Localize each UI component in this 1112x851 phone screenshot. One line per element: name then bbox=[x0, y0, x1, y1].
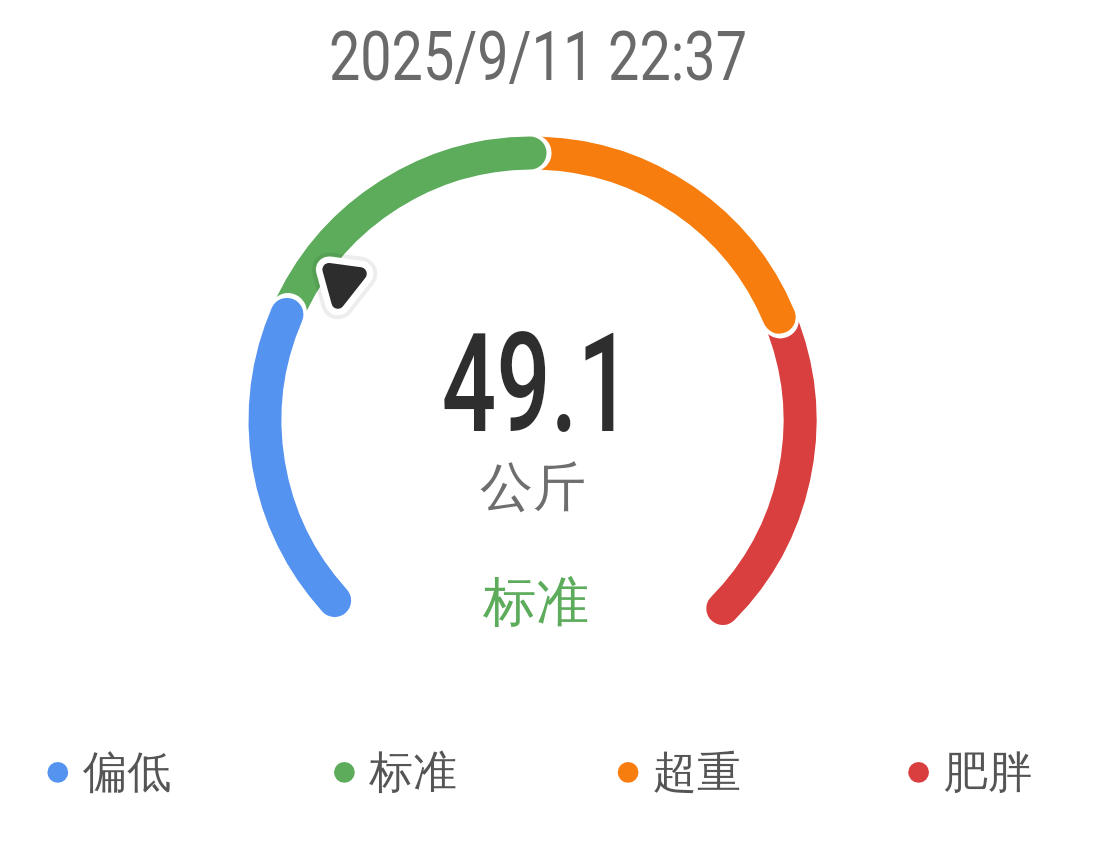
staticText: 标准 bbox=[483, 569, 589, 636]
staticText: 公斤 bbox=[480, 454, 586, 521]
staticText: 超重 bbox=[653, 745, 741, 800]
staticText: 2025/9/11 22:37 bbox=[329, 17, 747, 97]
staticText: 标准 bbox=[369, 745, 457, 800]
staticText: 肥胖 bbox=[944, 745, 1032, 800]
staticText: 偏低 bbox=[83, 745, 171, 800]
staticText: 49.1 bbox=[442, 304, 632, 465]
